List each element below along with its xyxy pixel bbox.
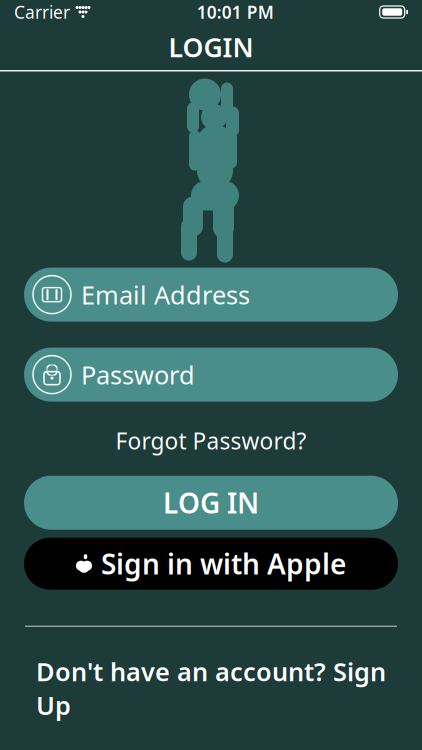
- button[interactable]: Password: [24, 348, 398, 402]
- staticText: Password: [81, 358, 195, 391]
- staticText: Carrier: [14, 0, 70, 23]
- staticText: Forgot Password?: [115, 426, 306, 456]
- staticText: Email Address: [81, 278, 250, 311]
- button[interactable]: Sign in with Apple: [24, 538, 398, 590]
- staticText: LOG IN: [163, 484, 259, 521]
- button[interactable]: Forgot Password?: [101, 420, 320, 462]
- button[interactable]: Don't have an account? Sign Up: [20, 649, 402, 728]
- staticText: 10:01 PM: [197, 0, 274, 23]
- button[interactable]: LOG IN: [24, 476, 398, 530]
- button[interactable]: Email Address: [24, 268, 398, 322]
- staticText: Sign in with Apple: [101, 545, 346, 582]
- staticText: Don't have an account? Sign Up: [36, 655, 386, 722]
- staticText: LOGIN: [168, 29, 253, 65]
